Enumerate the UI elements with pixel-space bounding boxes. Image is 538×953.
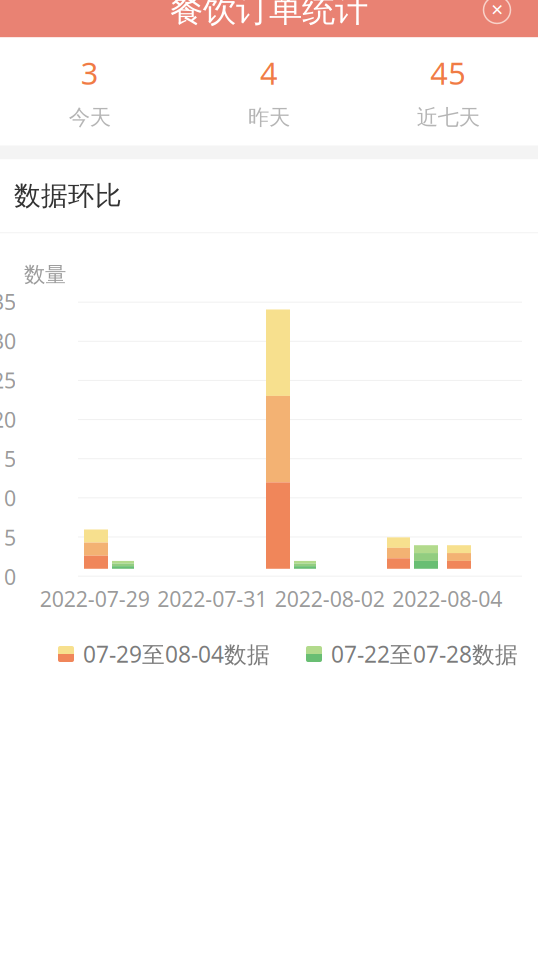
staticText: 20: [0, 405, 16, 434]
staticText: 07-22至07-28数据: [331, 639, 518, 669]
staticText: 昨天: [248, 104, 290, 130]
button[interactable]: 关闭: [473, 0, 521, 34]
button[interactable]: 4: [179, 37, 359, 145]
staticText: 今天: [69, 104, 111, 130]
staticText: 30: [0, 327, 16, 355]
staticText: 0: [4, 562, 16, 591]
staticText: 15: [0, 445, 16, 473]
staticText: 近七天: [417, 104, 480, 130]
staticText: 2022-08-04: [392, 585, 502, 613]
button[interactable]: 3: [0, 37, 179, 145]
staticText: 45: [430, 52, 466, 93]
staticText: 25: [0, 366, 16, 394]
button[interactable]: 45: [359, 37, 538, 145]
staticText: 2022-07-31: [157, 585, 267, 613]
staticText: 4: [260, 52, 278, 93]
staticText: 35: [0, 287, 16, 316]
staticText: 07-29至08-04数据: [83, 639, 270, 669]
staticText: 2022-08-02: [275, 585, 385, 613]
staticText: 3: [81, 52, 99, 93]
staticText: 5: [4, 523, 16, 551]
staticText: 10: [0, 484, 16, 512]
staticText: 2022-07-29: [40, 585, 150, 613]
staticText: 数据环比: [14, 180, 122, 212]
staticText: 餐饮订单统计: [170, 0, 368, 30]
staticText: ✕: [490, 1, 503, 19]
staticText: 数量: [24, 261, 66, 288]
